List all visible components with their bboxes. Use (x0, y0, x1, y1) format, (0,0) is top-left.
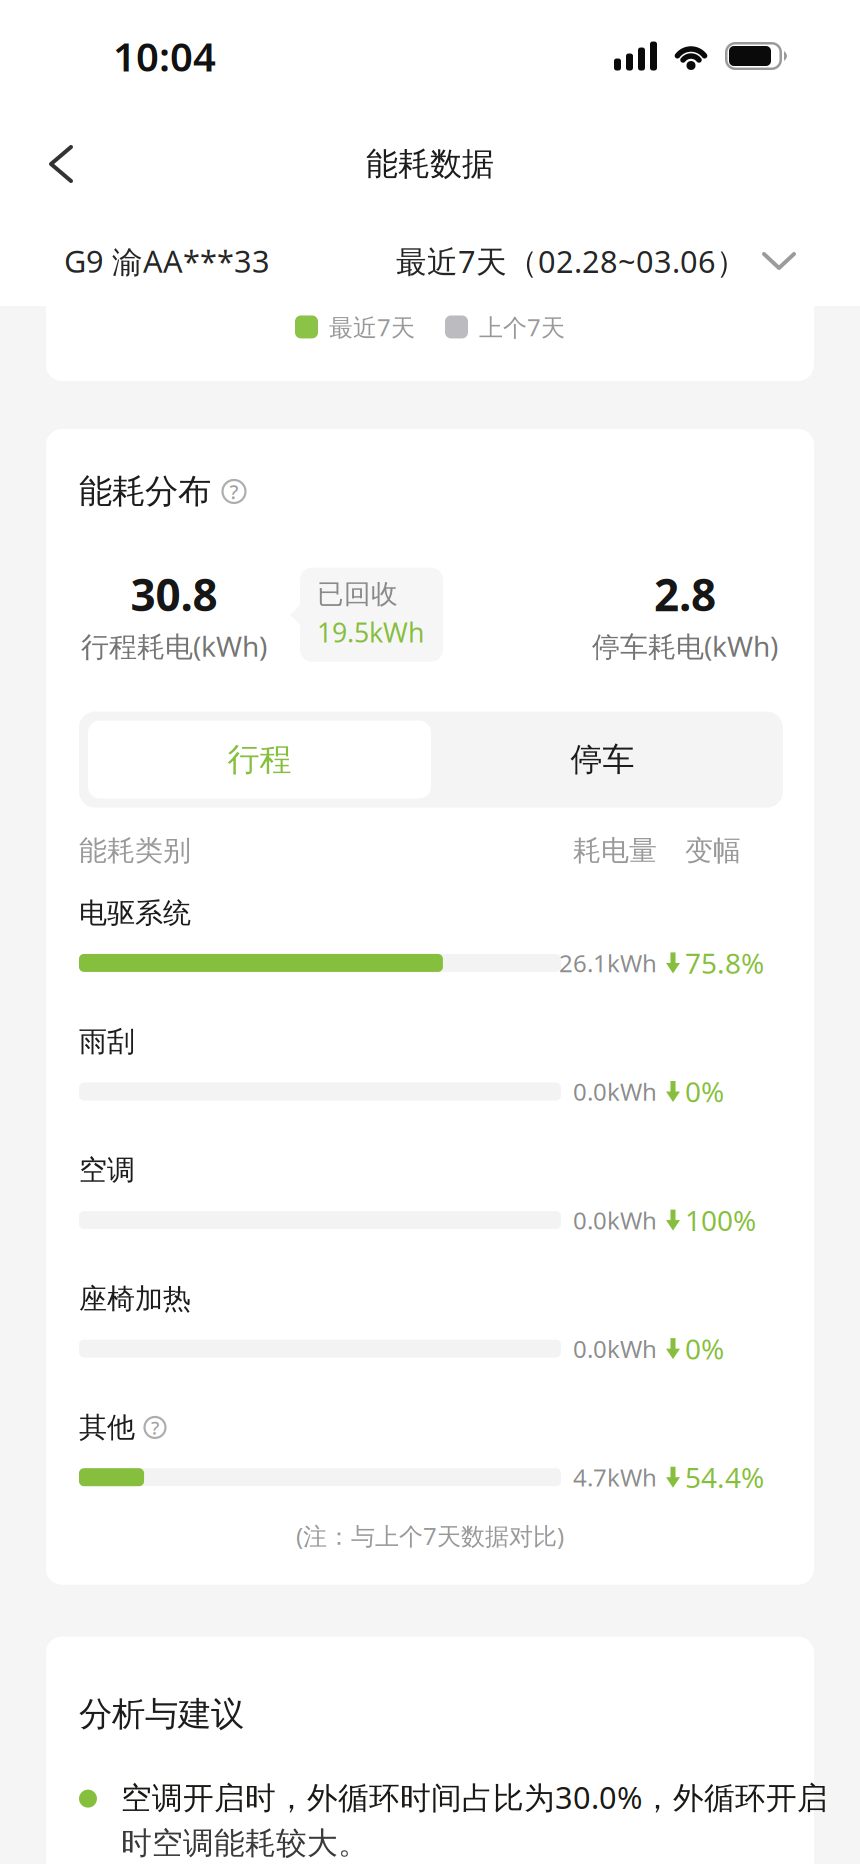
button[interactable]: 最近7天（02.28~03.06） (396, 241, 794, 281)
staticText: 电驱系统 (79, 896, 191, 930)
staticText: 空调开启时，外循环时间占比为30.0%，外循环开启 (121, 1777, 828, 1817)
staticText: 其他 (79, 1410, 135, 1445)
staticText: 100% (685, 1201, 756, 1239)
staticText: 0.0kWh (573, 1333, 657, 1365)
button[interactable]: 关于能耗分布 (221, 478, 247, 504)
staticText: 座椅加热 (79, 1282, 191, 1316)
staticText: 时空调能耗较大。 (121, 1824, 369, 1862)
staticText: 最近7天 (329, 311, 415, 343)
button[interactable]: 停车 (431, 721, 774, 799)
staticText: 0% (685, 1073, 724, 1110)
staticText: 54.4% (685, 1459, 764, 1496)
staticText: 行程 (227, 740, 291, 779)
staticText: 26.1kWh (559, 947, 657, 979)
staticText: 上个7天 (479, 311, 565, 343)
staticText: (注：与上个7天数据对比) (296, 1520, 564, 1552)
staticText: 行程耗电(kWh) (81, 627, 267, 665)
staticText: 10:04 (113, 29, 216, 82)
staticText: 30.8 (130, 565, 217, 623)
staticText: ? (229, 478, 238, 505)
staticText: 变幅 (685, 834, 741, 868)
staticText: 0% (685, 1330, 724, 1367)
staticText: 雨刮 (79, 1024, 135, 1059)
staticText: 0.0kWh (573, 1204, 657, 1236)
staticText: 分析与建议 (79, 1694, 244, 1735)
staticText: 0.0kWh (573, 1076, 657, 1107)
staticText: 19.5kWh (317, 614, 424, 650)
staticText: 75.8% (685, 944, 764, 981)
staticText: 4.7kWh (573, 1461, 657, 1493)
button[interactable]: 返回 (0, 127, 101, 201)
staticText: 已回收 (317, 578, 398, 610)
staticText: 停车耗电(kWh) (592, 627, 778, 665)
staticText: G9 渝AA***33 (64, 241, 270, 281)
staticText: 2.8 (654, 565, 716, 623)
button[interactable]: 关于其他 (143, 1415, 167, 1439)
staticText: 能耗数据 (366, 144, 494, 184)
staticText: 最近7天（02.28~03.06） (396, 241, 747, 281)
button[interactable]: 行程 (88, 721, 431, 799)
staticText: 耗电量 (573, 834, 657, 868)
staticText: 空调 (79, 1153, 135, 1187)
staticText: 能耗类别 (79, 834, 191, 868)
staticText: 能耗分布 (79, 471, 211, 512)
staticText: ? (151, 1415, 159, 1440)
staticText: 停车 (570, 740, 634, 779)
